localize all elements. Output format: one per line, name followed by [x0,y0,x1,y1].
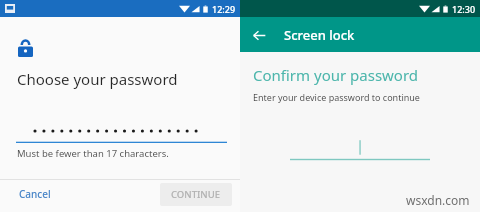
staticText: Must be fewer than 17 characters. [17,147,169,160]
staticText: Choose your password [17,69,178,89]
button[interactable]: Cancel [12,183,58,205]
staticText: Enter your device password to continue [253,91,420,103]
staticText: 12:29 [212,3,236,15]
staticText: Cancel [19,187,51,201]
staticText: wsxdn.com [406,192,470,208]
staticText: CONTINUE [171,188,221,201]
staticText: Confirm your password [253,65,419,85]
staticText: 12:30 [452,3,476,15]
button[interactable]: CONTINUE [160,183,232,206]
staticText: Screen lock [284,26,355,44]
button[interactable]: Back [248,24,270,46]
